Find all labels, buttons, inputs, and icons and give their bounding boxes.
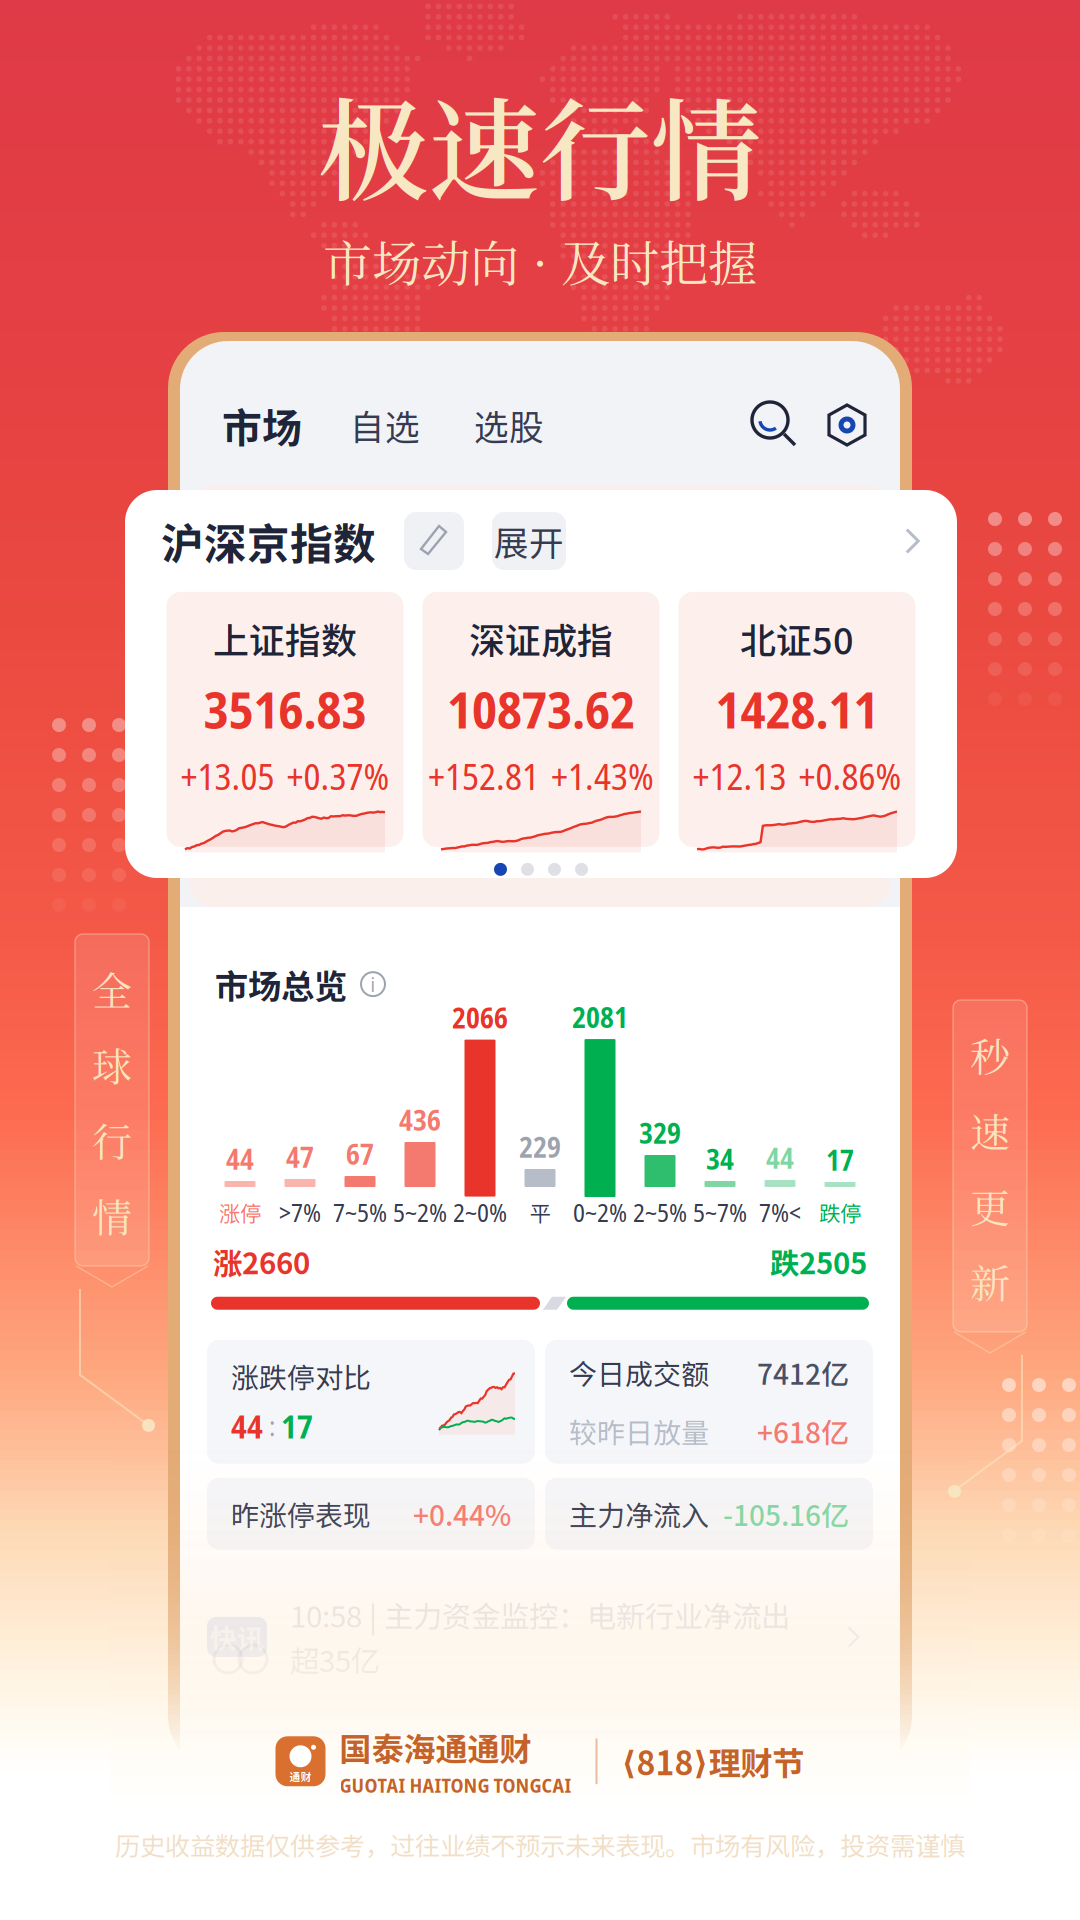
- staticText: 情: [92, 1186, 132, 1244]
- staticText: 速: [970, 1101, 1010, 1159]
- staticText: 44: [226, 1140, 254, 1178]
- staticText: 2066: [452, 998, 508, 1036]
- staticText: 2~5%: [633, 1195, 687, 1229]
- button[interactable]: 上证指数: [166, 592, 403, 847]
- staticText: 球: [92, 1035, 132, 1093]
- staticText: 秒: [970, 1026, 1010, 1083]
- staticText: +618亿: [757, 1411, 849, 1451]
- button[interactable]: 市场: [222, 396, 302, 454]
- staticText: +0.86%: [798, 751, 901, 800]
- staticText: 展开: [494, 516, 564, 566]
- staticText: 新: [970, 1252, 1010, 1310]
- staticText: 329: [639, 1114, 681, 1152]
- staticText: 快讯: [210, 1618, 264, 1656]
- staticText: 17: [826, 1141, 854, 1179]
- staticText: 较昨日放量: [569, 1411, 709, 1451]
- button[interactable]: 更多: [899, 528, 925, 554]
- staticText: ⟨818⟩理财节: [621, 1738, 804, 1784]
- staticText: 44: [766, 1139, 794, 1177]
- staticText: +12.13: [692, 751, 786, 800]
- staticText: 全: [92, 960, 132, 1017]
- staticText: 历史收益数据仅供参考，过往业绩不预示未来表现。市场有风险，投资需谨慎: [115, 1826, 965, 1863]
- staticText: 今日成交额: [569, 1352, 709, 1393]
- staticText: 7%<: [759, 1195, 801, 1229]
- staticText: 通财: [289, 1769, 311, 1784]
- button[interactable]: 展开: [492, 512, 566, 570]
- button[interactable]: 北证50: [678, 592, 915, 847]
- staticText: 2~0%: [453, 1195, 507, 1229]
- staticText: 更: [970, 1177, 1010, 1234]
- staticText: 极速行情: [318, 64, 762, 223]
- staticText: 自选: [350, 400, 420, 450]
- button[interactable]: 搜索: [752, 402, 798, 448]
- staticText: 10873.62: [447, 674, 635, 743]
- staticText: 436: [399, 1101, 441, 1139]
- staticText: 深证成指: [469, 612, 613, 664]
- staticText: >7%: [279, 1195, 321, 1229]
- button[interactable]: 今日成交额: [545, 1340, 873, 1464]
- staticText: 跌停: [819, 1197, 861, 1228]
- staticText: 超35亿: [290, 1638, 380, 1680]
- staticText: -105.16亿: [723, 1493, 849, 1534]
- staticText: 10:58 | 主力资金监控：电新行业净流出: [290, 1593, 790, 1636]
- staticText: +13.05: [180, 751, 274, 800]
- staticText: GUOTAI HAITONG TONGCAI: [339, 1771, 571, 1798]
- staticText: 67: [346, 1135, 374, 1173]
- button[interactable]: 涨跌停对比: [207, 1340, 535, 1464]
- staticText: 2081: [572, 998, 628, 1036]
- button[interactable]: 编辑: [404, 512, 464, 570]
- staticText: 涨停: [219, 1197, 261, 1228]
- staticText: 1428.11: [715, 674, 878, 743]
- staticText: 平: [529, 1197, 550, 1228]
- staticText: 市场总览: [215, 960, 347, 1008]
- staticText: 44: [231, 1404, 263, 1448]
- staticText: 上证指数: [213, 612, 357, 664]
- staticText: 市场: [222, 396, 302, 454]
- staticText: 229: [519, 1128, 561, 1166]
- staticText: +152.81: [428, 751, 539, 800]
- button[interactable]: 自选: [350, 400, 420, 450]
- staticText: 行: [92, 1111, 132, 1168]
- staticText: 7412亿: [757, 1352, 849, 1393]
- staticText: 沪深京指数: [161, 510, 376, 572]
- staticText: +0.44%: [413, 1493, 511, 1534]
- staticText: 跌2505: [770, 1240, 867, 1283]
- button[interactable]: 快讯: [180, 1582, 890, 1692]
- staticText: :: [269, 1408, 275, 1444]
- staticText: 昨涨停表现: [231, 1493, 371, 1534]
- staticText: 5~2%: [393, 1195, 447, 1229]
- staticText: 选股: [474, 400, 544, 450]
- staticText: i: [370, 970, 375, 998]
- staticText: 5~7%: [693, 1195, 747, 1229]
- staticText: 涨2660: [213, 1240, 310, 1283]
- staticText: 北证50: [740, 612, 854, 664]
- button[interactable]: 主力净流入: [545, 1478, 873, 1550]
- staticText: 市场动向 · 及时把握: [323, 225, 757, 296]
- button[interactable]: 深证成指: [422, 592, 659, 847]
- staticText: 7~5%: [333, 1195, 387, 1229]
- button[interactable]: 昨涨停表现: [207, 1478, 535, 1550]
- button[interactable]: 扫一扫: [826, 403, 868, 447]
- staticText: 17: [281, 1404, 313, 1448]
- staticText: 涨跌停对比: [231, 1356, 371, 1396]
- staticText: 3516.83: [203, 674, 366, 743]
- staticText: 国泰海通通财: [339, 1724, 531, 1770]
- staticText: +1.43%: [551, 751, 654, 800]
- staticText: 0~2%: [573, 1195, 627, 1229]
- staticText: +0.37%: [286, 751, 389, 800]
- staticText: 47: [286, 1138, 314, 1176]
- staticText: 主力净流入: [569, 1493, 709, 1534]
- staticText: 34: [706, 1140, 734, 1178]
- button[interactable]: 选股: [474, 400, 544, 450]
